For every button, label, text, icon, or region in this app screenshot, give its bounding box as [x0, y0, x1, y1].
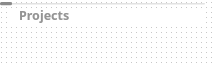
button[interactable] [8, 9, 203, 26]
staticText: Projects [19, 7, 70, 24]
